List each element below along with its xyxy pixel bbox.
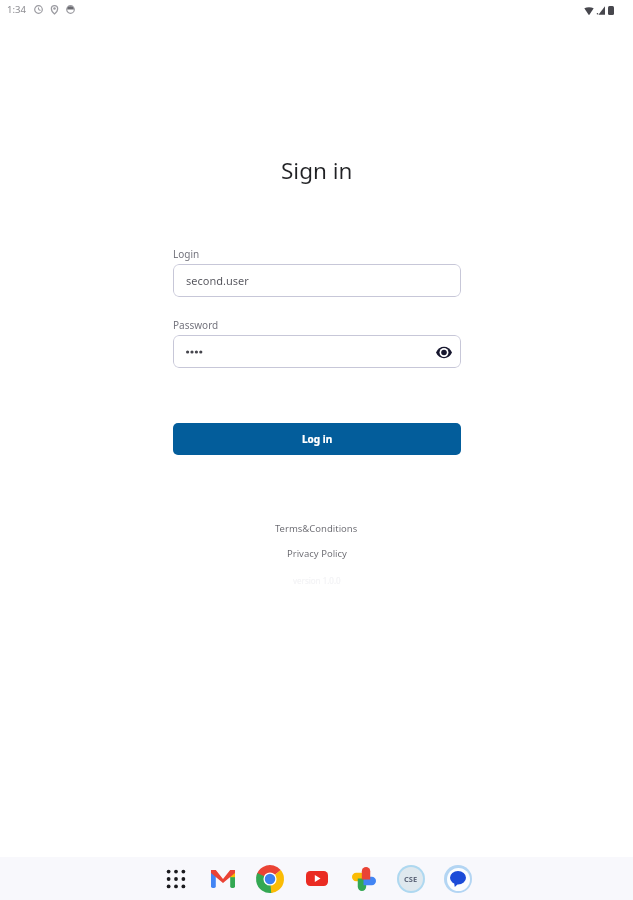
button[interactable]: YouTube — [293, 857, 340, 900]
staticText: second.user — [186, 273, 249, 288]
button[interactable]: Terms&Conditions — [261, 516, 372, 541]
button[interactable]: Privacy Policy — [273, 541, 361, 566]
button[interactable]: Log in — [173, 423, 461, 455]
staticText: Login — [173, 247, 200, 261]
staticText: Terms&Conditions — [275, 522, 358, 535]
button[interactable]: Password — [173, 335, 461, 368]
button[interactable]: Messages — [434, 857, 481, 900]
button[interactable]: Photos — [340, 857, 387, 900]
button[interactable]: Chrome — [246, 857, 293, 900]
staticText: version 1.0.0 — [293, 575, 341, 586]
button[interactable]: Show password — [434, 342, 454, 362]
staticText: CSE — [404, 874, 418, 884]
button[interactable]: All apps — [152, 857, 199, 900]
button[interactable]: second.user — [173, 264, 461, 297]
staticText: Privacy Policy — [287, 547, 347, 560]
button[interactable]: Gmail — [199, 857, 246, 900]
button[interactable]: CSE — [387, 857, 434, 900]
staticText: Log in — [302, 432, 333, 446]
staticText: Sign in — [281, 155, 353, 186]
staticText: 1:34 — [7, 3, 26, 16]
staticText: Password — [173, 318, 219, 332]
